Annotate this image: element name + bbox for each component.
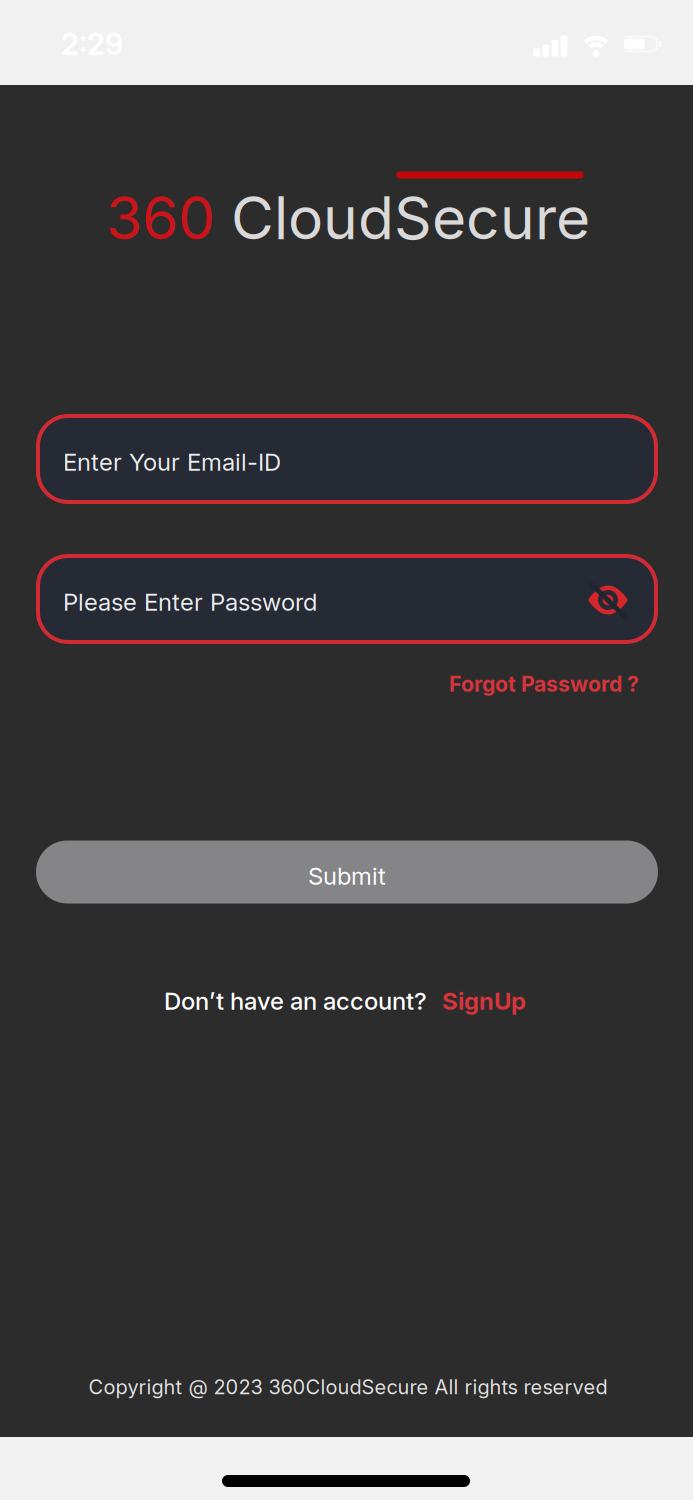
- staticText: Copyright @ 2023 360CloudSecure All righ…: [88, 1375, 607, 1399]
- staticText: Forgot Password ?: [449, 671, 639, 697]
- staticText: SignUp: [442, 987, 526, 1015]
- staticText: Enter Your Email-ID: [63, 448, 281, 476]
- button[interactable]: Submit: [36, 840, 658, 903]
- button[interactable]: SignUp: [442, 987, 526, 1015]
- button[interactable]: Enter Your Email-ID: [36, 414, 658, 504]
- staticText: CloudSecure: [231, 183, 590, 253]
- button[interactable]: [585, 578, 631, 622]
- staticText: Submit: [308, 862, 386, 890]
- staticText: 2:29: [61, 27, 123, 61]
- staticText: 360: [106, 183, 215, 253]
- staticText: Please Enter Password: [63, 588, 317, 616]
- staticText: Don’t have an account?: [164, 987, 427, 1015]
- button[interactable]: Please Enter Password: [36, 554, 658, 644]
- button[interactable]: Forgot Password ?: [449, 671, 639, 697]
